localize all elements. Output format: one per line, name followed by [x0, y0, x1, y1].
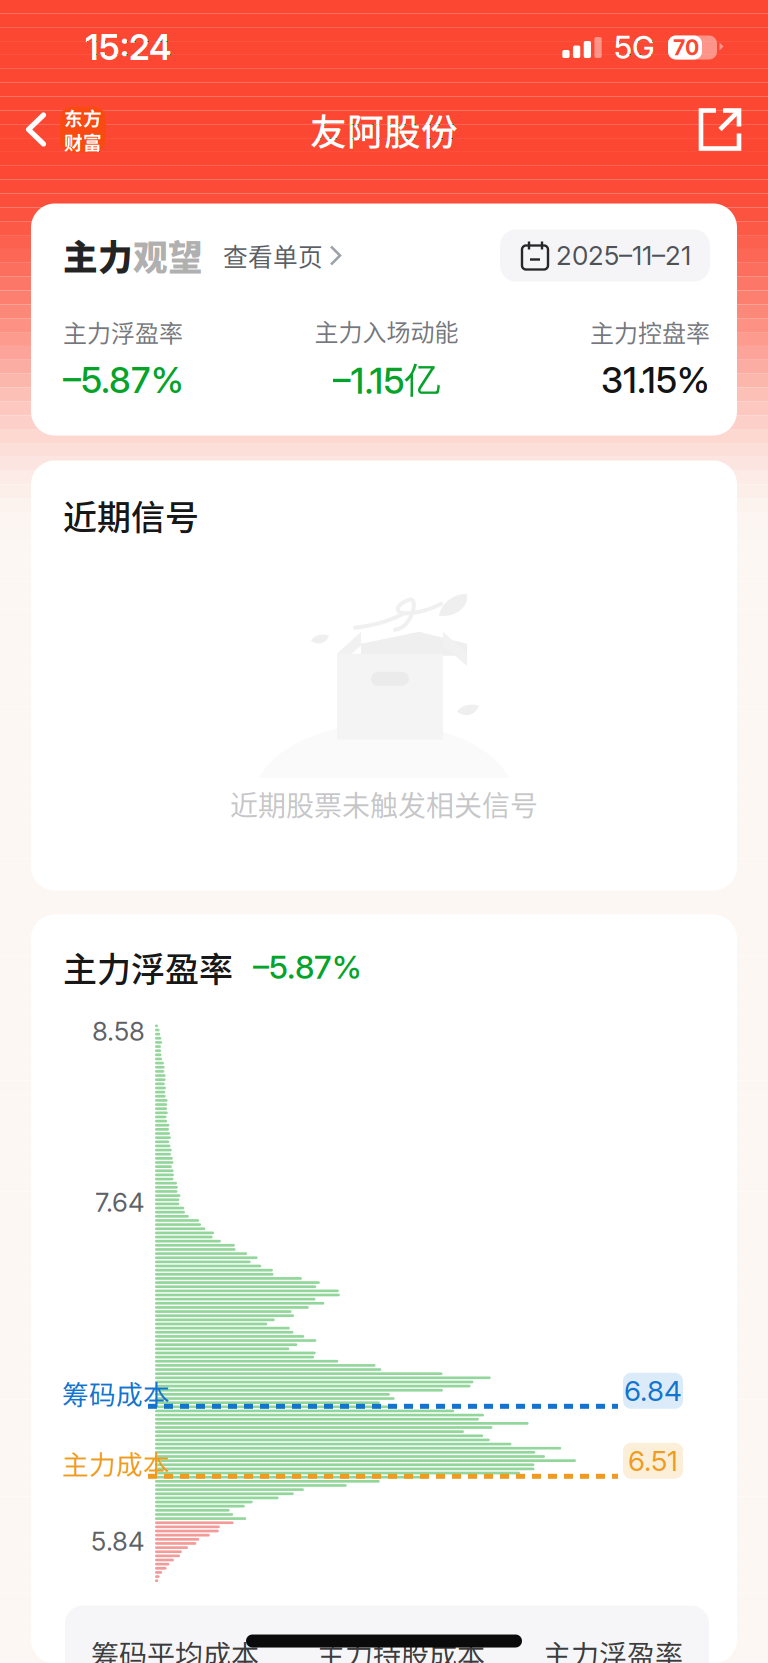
staticText: –1.15亿	[332, 357, 440, 403]
staticText: 2025–11–21	[556, 240, 691, 271]
staticText: 5G	[614, 29, 655, 66]
staticText: 15:24	[85, 26, 172, 68]
staticText: 主力入场动能	[314, 313, 458, 348]
staticText: 主力浮盈率	[543, 1633, 683, 1663]
staticText: 近期信号	[63, 490, 199, 540]
staticText: 6.51	[628, 1444, 678, 1478]
staticText: 主力成本	[62, 1443, 170, 1482]
staticText: 70	[673, 35, 699, 60]
staticText: 主力	[63, 230, 133, 281]
button[interactable]: 查看单页	[223, 238, 343, 273]
staticText: 8.58	[92, 1015, 145, 1047]
staticText: 6.84	[624, 1374, 682, 1408]
staticText: 查看单页	[223, 238, 323, 273]
staticText: 观望	[133, 230, 203, 281]
staticText: 主力持股成本	[317, 1633, 485, 1663]
button[interactable]: 2025–11–21	[500, 229, 710, 281]
staticText: 主力控盘率	[590, 314, 710, 349]
button[interactable]: Back	[0, 95, 122, 163]
staticText: 东方	[64, 104, 102, 131]
staticText: 7.64	[95, 1186, 145, 1218]
staticText: 筹码成本	[62, 1373, 170, 1412]
button[interactable]: Share	[670, 95, 768, 163]
staticText: 财富	[64, 128, 102, 155]
staticText: 近期股票未触发相关信号	[230, 784, 538, 824]
staticText: 筹码平均成本	[91, 1633, 259, 1663]
staticText: 5.84	[91, 1525, 145, 1557]
staticText: 主力浮盈率	[63, 942, 233, 992]
staticText: 友阿股份	[310, 103, 458, 156]
staticText: –5.87%	[63, 358, 184, 402]
staticText: –5.87%	[253, 948, 362, 986]
staticText: 31.15%	[601, 358, 710, 402]
staticText: 主力浮盈率	[63, 314, 183, 349]
